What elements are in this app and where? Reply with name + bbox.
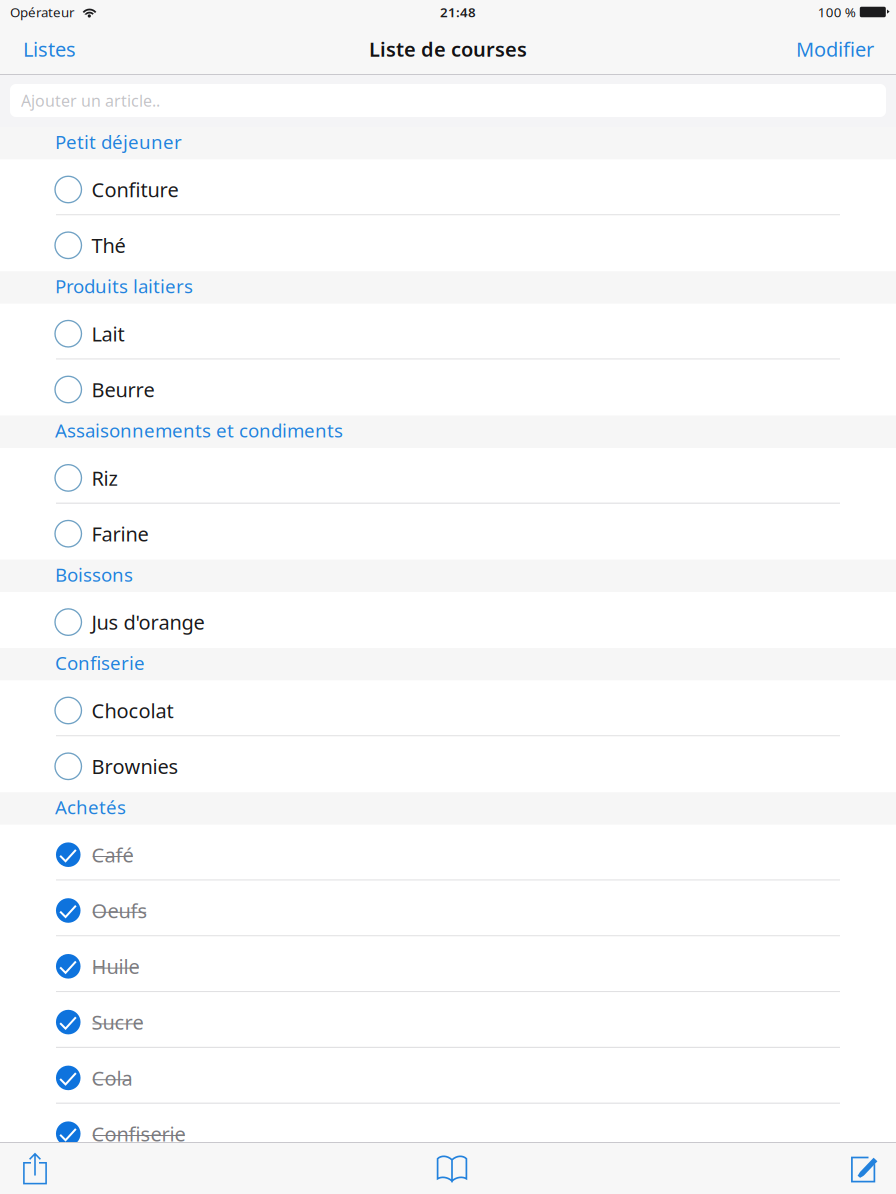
button[interactable]: Confiture [0, 160, 896, 215]
button[interactable]: Farine [0, 504, 896, 560]
button[interactable]: Lait [0, 304, 896, 360]
staticText: Assaisonnements et condiments [55, 418, 343, 443]
button[interactable]: Huile [0, 936, 896, 992]
staticText: Modifier [796, 36, 874, 62]
staticText: Huile [91, 953, 139, 980]
staticText: Boissons [55, 562, 133, 587]
staticText: Brownies [91, 753, 178, 780]
staticText: Jus d'orange [91, 609, 204, 635]
staticText: Riz [91, 465, 117, 491]
staticText: Oeufs [91, 897, 147, 924]
staticText: Achetés [55, 795, 126, 819]
button[interactable]: Partager [0, 1143, 70, 1194]
button[interactable]: Riz [0, 448, 896, 504]
staticText: Confiserie [91, 1120, 185, 1147]
staticText: Confiture [91, 176, 178, 203]
button[interactable]: Listes [417, 1143, 487, 1194]
staticText: Petit déjeuner [55, 129, 182, 154]
staticText: Sucre [91, 1009, 143, 1035]
staticText: Confiserie [55, 650, 145, 675]
staticText: Café [91, 841, 133, 868]
staticText: Farine [91, 520, 148, 547]
button[interactable]: Oeufs [0, 881, 896, 936]
button[interactable]: Modifier [782, 24, 896, 74]
staticText: Thé [91, 232, 125, 259]
staticText: Lait [91, 320, 124, 347]
staticText: 21:48 [440, 3, 476, 21]
staticText: Opérateur [10, 3, 75, 21]
button[interactable]: Chocolat [0, 681, 896, 736]
staticText: 100 % [818, 3, 856, 21]
button[interactable]: Beurre [0, 360, 896, 415]
button[interactable]: Nouvel article [834, 1143, 896, 1194]
button[interactable]: Cola [0, 1048, 896, 1104]
button[interactable]: Thé [0, 215, 896, 271]
staticText: Listes [23, 36, 76, 62]
button[interactable]: Sucre [0, 992, 896, 1048]
button[interactable]: Listes [0, 24, 90, 74]
staticText: Liste de courses [369, 36, 527, 62]
button[interactable]: Jus d'orange [0, 592, 896, 648]
staticText: Beurre [91, 376, 154, 403]
staticText: Ajouter un article.. [21, 90, 160, 111]
button[interactable]: Café [0, 825, 896, 881]
staticText: Chocolat [91, 697, 173, 724]
button[interactable]: Brownies [0, 736, 896, 792]
staticText: Produits laitiers [55, 274, 193, 298]
staticText: Cola [91, 1065, 132, 1091]
button[interactable]: Confiserie [0, 1104, 896, 1160]
